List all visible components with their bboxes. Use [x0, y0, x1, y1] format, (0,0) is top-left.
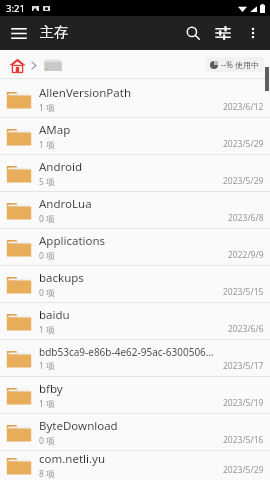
- staticText: bfby: [39, 381, 63, 397]
- button[interactable]: AMap: [0, 118, 270, 155]
- staticText: 8 项: [39, 468, 55, 480]
- staticText: 1 项: [39, 324, 55, 336]
- staticText: 2023/5/29: [223, 175, 264, 187]
- staticText: 2023/6/8: [228, 212, 264, 224]
- staticText: 2023/6/12: [223, 101, 264, 113]
- staticText: AndroLua: [39, 196, 92, 212]
- button[interactable]: More options: [238, 18, 268, 48]
- staticText: ByteDownload: [39, 418, 118, 434]
- staticText: 2022/9/9: [228, 249, 264, 261]
- staticText: 2023/5/15: [223, 286, 264, 298]
- button[interactable]: baidu: [0, 303, 270, 340]
- button[interactable]: Menu: [6, 20, 32, 46]
- staticText: 3:21: [6, 2, 25, 15]
- staticText: AllenVersionPath: [39, 85, 131, 101]
- staticText: 0 项: [39, 287, 55, 299]
- staticText: 0 项: [39, 250, 55, 262]
- staticText: --% 使用中: [221, 59, 259, 70]
- button[interactable]: Applications: [0, 229, 270, 266]
- staticText: backups: [39, 270, 84, 286]
- staticText: 1 项: [39, 360, 55, 372]
- button[interactable]: Sort: [208, 18, 238, 48]
- staticText: 2023/5/19: [223, 397, 264, 409]
- button[interactable]: ByteDownload: [0, 414, 270, 451]
- staticText: bdb53ca9-e86b-4e62-95ac-63005069f317: [39, 345, 219, 359]
- button[interactable]: com.netli.yu: [0, 451, 270, 480]
- button[interactable]: --% 使用中: [210, 59, 259, 70]
- staticText: AMap: [39, 122, 71, 138]
- staticText: 5 项: [39, 176, 55, 188]
- button[interactable]: bfby: [0, 377, 270, 414]
- staticText: 2023/6/6: [228, 323, 264, 335]
- staticText: 主存: [40, 24, 68, 42]
- staticText: 2023/5/17: [223, 360, 264, 372]
- staticText: 0 项: [39, 435, 55, 447]
- staticText: 1 项: [39, 398, 55, 410]
- button[interactable]: Home: [6, 54, 28, 76]
- button[interactable]: Storage: [41, 55, 65, 75]
- button[interactable]: backups: [0, 266, 270, 303]
- staticText: Android: [39, 159, 83, 175]
- staticText: Applications: [39, 233, 106, 249]
- staticText: 2023/5/29: [223, 464, 264, 476]
- button[interactable]: Android: [0, 155, 270, 192]
- staticText: 1 项: [39, 102, 55, 114]
- staticText: 2023/5/29: [223, 138, 264, 150]
- button[interactable]: Search: [178, 18, 208, 48]
- staticText: 2023/5/16: [223, 434, 264, 446]
- staticText: 0 项: [39, 213, 55, 225]
- staticText: baidu: [39, 307, 70, 323]
- button[interactable]: bdb53ca9-e86b-4e62-95ac-63005069f317: [0, 340, 270, 377]
- button[interactable]: AllenVersionPath: [0, 81, 270, 118]
- staticText: com.netli.yu: [39, 451, 106, 467]
- button[interactable]: AndroLua: [0, 192, 270, 229]
- staticText: 1 项: [39, 139, 55, 151]
